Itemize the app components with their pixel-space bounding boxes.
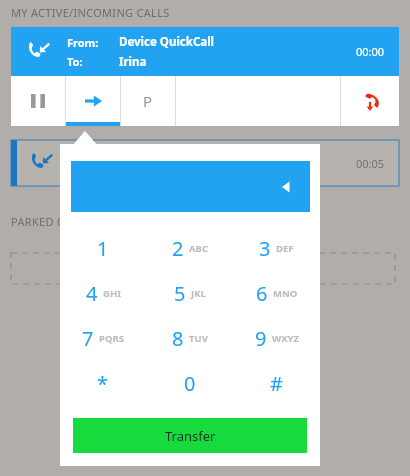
button[interactable]: 1 xyxy=(60,226,146,271)
button[interactable]: 5 xyxy=(146,271,233,316)
staticText: MY ACTIVE/INCOMING CALLS xyxy=(11,5,170,20)
other: Backspace xyxy=(276,177,296,197)
staticText: 4 xyxy=(86,280,98,307)
staticText: WXYZ xyxy=(272,332,299,345)
staticText: From: xyxy=(67,35,99,50)
staticText: * xyxy=(97,370,109,397)
staticText: JKL xyxy=(191,287,206,300)
button[interactable]: Transfer xyxy=(66,76,120,126)
staticText: 6 xyxy=(256,280,268,307)
staticText: Irina xyxy=(119,54,147,70)
button[interactable]: * xyxy=(60,361,146,406)
staticText: TUV xyxy=(189,332,208,345)
staticText: ABC xyxy=(189,242,208,255)
staticText: 9 xyxy=(255,325,267,352)
staticText: 2 xyxy=(172,235,184,262)
button[interactable]: 7 xyxy=(60,316,146,361)
button[interactable]: 4 xyxy=(60,271,146,316)
staticText: 7 xyxy=(82,325,94,352)
staticText: 3 xyxy=(259,235,271,262)
staticText: # xyxy=(270,370,283,397)
button[interactable]: From: xyxy=(11,27,399,76)
button[interactable]: 00:05 xyxy=(11,140,399,186)
staticText: 0 xyxy=(184,370,196,397)
staticText: 00:05 xyxy=(356,156,385,171)
staticText: Device QuickCall xyxy=(119,34,215,50)
button[interactable]: Transfer xyxy=(73,418,307,453)
staticText: MNO xyxy=(273,287,298,300)
button[interactable]: 0 xyxy=(146,361,233,406)
staticText: Transfer xyxy=(165,427,216,445)
staticText: DEF xyxy=(276,242,294,255)
button[interactable]: 3 xyxy=(233,226,320,271)
staticText: P xyxy=(143,91,153,111)
staticText: 5 xyxy=(174,280,186,307)
button[interactable]: Backspace xyxy=(71,161,310,212)
button[interactable]: Hang up xyxy=(341,76,399,126)
button[interactable]: Park xyxy=(121,76,175,126)
staticText: To: xyxy=(67,54,83,69)
staticText: 1 xyxy=(97,235,109,262)
staticText: 00:00 xyxy=(356,44,385,59)
button[interactable]: 2 xyxy=(146,226,233,271)
staticText: PQRS xyxy=(99,332,124,345)
staticText: PARKED CALLS xyxy=(11,214,90,229)
staticText: 8 xyxy=(172,325,184,352)
button[interactable]: 6 xyxy=(233,271,320,316)
button[interactable]: 9 xyxy=(233,316,320,361)
staticText: GHI xyxy=(103,287,121,300)
button[interactable]: 8 xyxy=(146,316,233,361)
button[interactable]: # xyxy=(233,361,320,406)
button[interactable]: Hold xyxy=(11,76,65,126)
